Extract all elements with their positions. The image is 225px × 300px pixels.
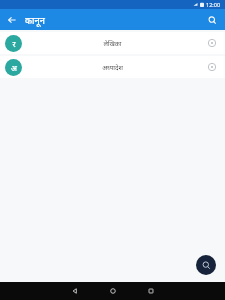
button[interactable]: Back xyxy=(3,11,21,29)
button[interactable]: More info xyxy=(204,35,220,51)
button[interactable]: Search xyxy=(196,255,216,275)
button[interactable]: Home xyxy=(94,282,132,300)
staticText: 12:00 xyxy=(206,1,221,8)
staticText: लेखिका xyxy=(103,39,122,48)
staticText: र xyxy=(12,39,16,49)
button[interactable]: More info xyxy=(204,59,220,75)
button[interactable]: Recent apps xyxy=(132,282,170,300)
staticText: अ xyxy=(11,63,17,73)
button[interactable]: लेखिका xyxy=(0,32,225,54)
button[interactable]: Search xyxy=(203,11,221,29)
button[interactable]: Back xyxy=(56,282,94,300)
button[interactable]: अध्यादेश xyxy=(0,56,225,78)
staticText: कानून xyxy=(25,14,45,26)
staticText: अध्यादेश xyxy=(102,63,123,72)
